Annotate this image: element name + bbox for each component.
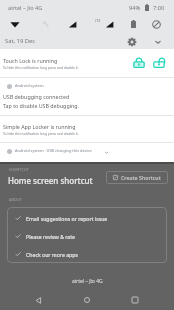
staticText: airtel – Jio 4G <box>8 4 43 12</box>
staticText: LTE <box>95 19 101 23</box>
staticText: ABOUT <box>9 197 23 202</box>
staticText: 7:00 <box>153 4 165 12</box>
button[interactable]: Android system <box>0 78 174 115</box>
button[interactable]: Settings <box>124 34 140 50</box>
button[interactable]: Please review & rate <box>7 227 167 245</box>
button[interactable]: Home <box>75 290 99 310</box>
staticText: Create Shortcut <box>121 174 161 181</box>
staticText: SHORTCUT <box>9 167 30 172</box>
button[interactable]: Email suggestions or report issue <box>7 209 167 227</box>
staticText: Email suggestions or report issue <box>26 215 108 222</box>
button[interactable]: Unlock <box>149 52 169 72</box>
staticText: Touch Lock is running <box>3 57 58 64</box>
staticText: Home screen shortcut <box>8 175 93 186</box>
staticText: Simple App Locker is running <box>3 123 76 130</box>
button[interactable]: Create Shortcut <box>106 171 168 184</box>
button[interactable]: Lock <box>129 52 149 72</box>
staticText: To hide this notification long press and… <box>3 131 79 135</box>
button[interactable]: Android system · USB charging this devic… <box>0 143 174 162</box>
staticText: Tap to disable USB debugging. <box>3 102 79 109</box>
staticText: Check our more apps <box>26 251 78 258</box>
button[interactable]: Simple App Locker is running <box>0 116 174 142</box>
button[interactable]: Back <box>26 290 50 310</box>
staticText: Android system · USB charging this devic… <box>15 148 92 153</box>
staticText: 94% <box>129 4 141 12</box>
staticText: USB debugging connected <box>3 93 70 100</box>
staticText: Android system <box>15 83 44 88</box>
staticText: airtel – Jio 4G <box>72 278 103 285</box>
button[interactable]: Recent apps <box>123 290 147 310</box>
button[interactable]: Expand quick settings <box>150 34 166 50</box>
button[interactable]: Check our more apps <box>7 245 167 263</box>
staticText: To hide this notification long press and… <box>3 65 79 69</box>
button[interactable]: Touch Lock is running <box>0 49 174 77</box>
staticText: Please review & rate <box>26 233 76 240</box>
staticText: Sat, 19 Dec <box>5 37 36 45</box>
